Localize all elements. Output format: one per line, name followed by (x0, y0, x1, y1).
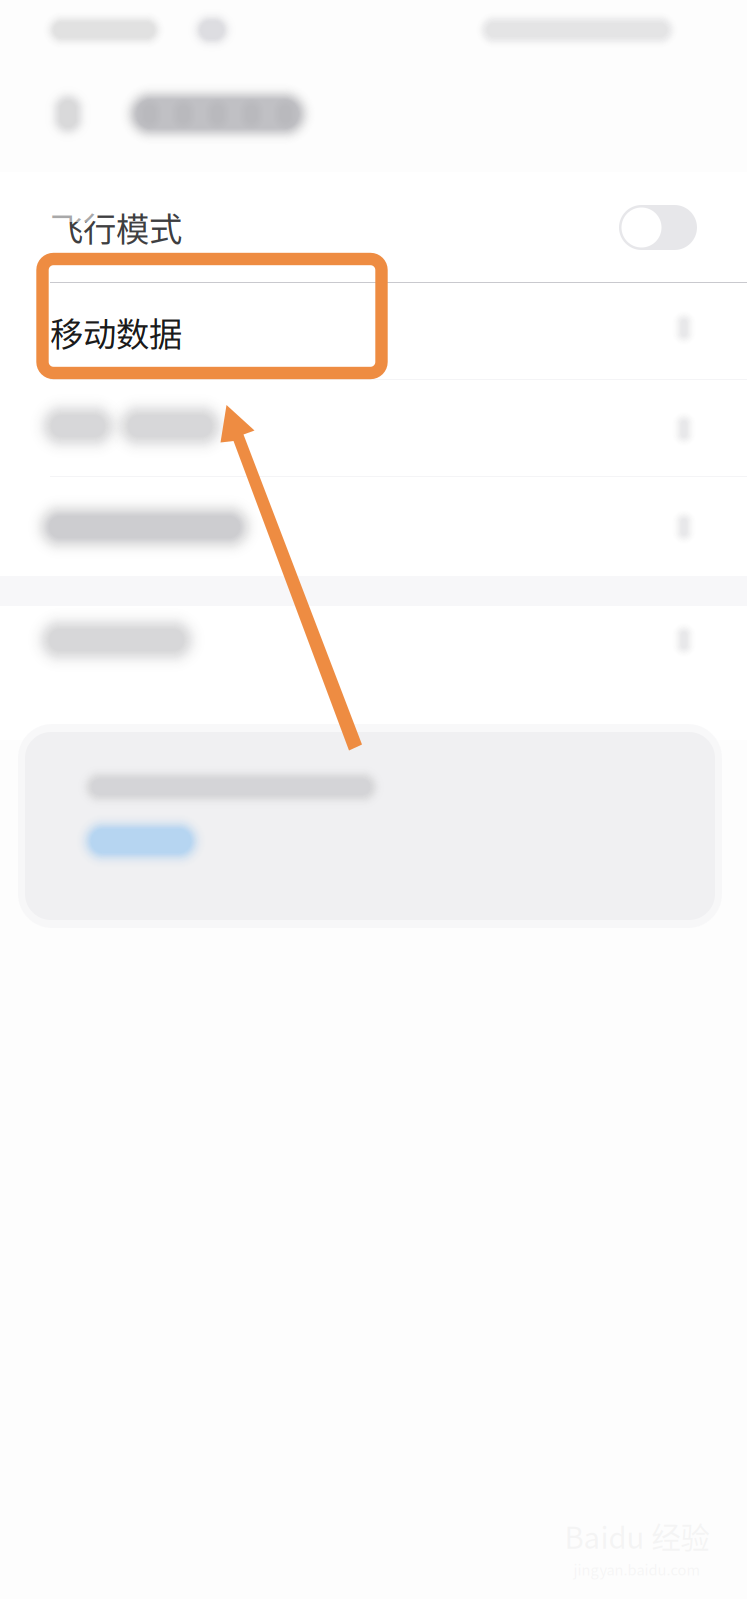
staticText: Baidu 经验 (564, 1515, 709, 1557)
staticText: 飞行模式 (50, 203, 182, 251)
button[interactable]: 飞行模式 (0, 172, 747, 282)
button[interactable]: 移动数据 (0, 283, 747, 379)
staticText: 移动数据 (50, 308, 182, 356)
